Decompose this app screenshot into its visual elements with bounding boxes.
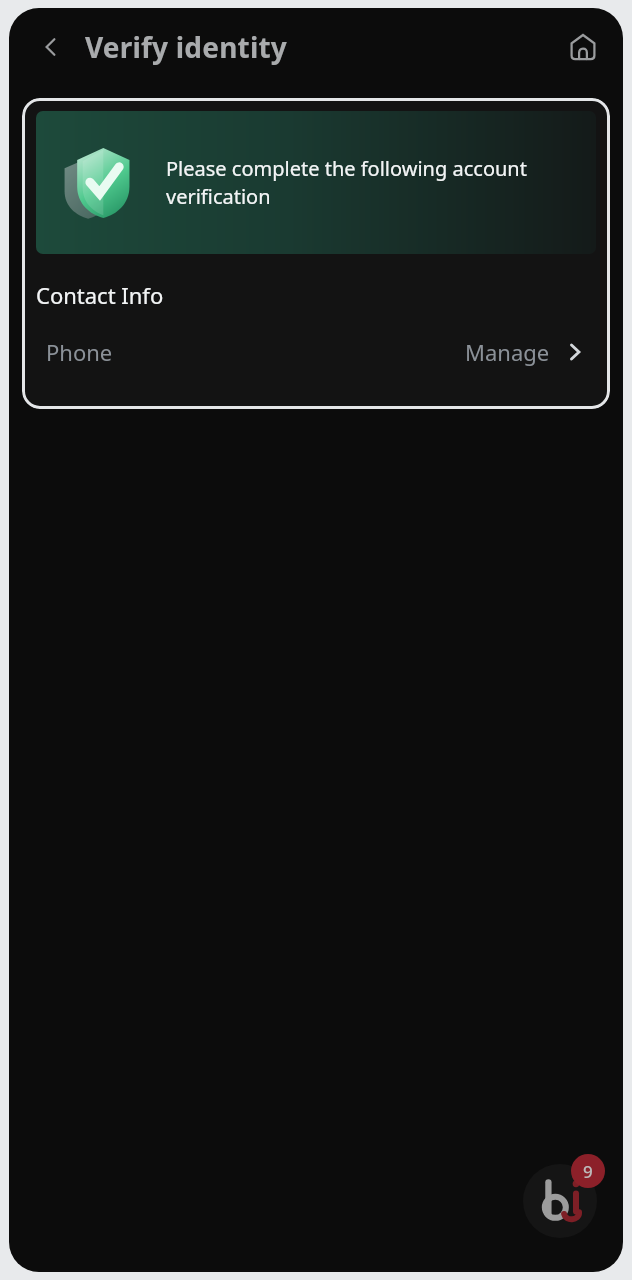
staticText: 9 xyxy=(583,1160,593,1183)
button[interactable]: Back xyxy=(29,25,73,69)
button[interactable]: Home xyxy=(559,23,607,71)
staticText: Phone xyxy=(46,337,113,367)
staticText: Verify identity xyxy=(85,28,287,66)
staticText: Contact Info xyxy=(36,280,164,310)
staticText: Manage xyxy=(465,337,550,367)
button[interactable]: Support chat, 9 unread xyxy=(523,1154,607,1238)
staticText: Please complete the following account ve… xyxy=(166,155,556,210)
button[interactable]: Phone xyxy=(36,326,596,378)
